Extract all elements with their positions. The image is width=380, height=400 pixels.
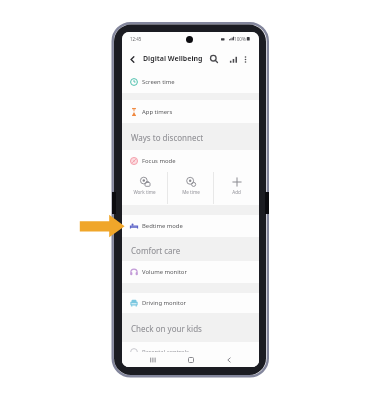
button[interactable]: Screen time [122, 70, 259, 93]
button[interactable]: Navigate up [125, 46, 139, 72]
button[interactable]: Usage statistics [226, 46, 240, 72]
button[interactable]: App timers [122, 100, 259, 123]
staticText: Parental controls [142, 348, 190, 356]
button[interactable]: Driving monitor [122, 293, 259, 313]
button[interactable]: Home [183, 352, 199, 367]
button[interactable]: Me time [168, 170, 213, 205]
button[interactable]: Search [207, 46, 221, 72]
button[interactable]: Bedtime mode [122, 215, 259, 237]
staticText: Volume monitor [142, 268, 187, 276]
staticText: Screen time [142, 78, 175, 86]
button[interactable]: More options [238, 46, 252, 72]
button[interactable]: Work time [122, 170, 167, 205]
staticText: Add [232, 189, 241, 195]
staticText: Check on your kids [131, 323, 202, 334]
staticText: 12:45 [130, 36, 142, 42]
staticText: 100% [234, 36, 246, 42]
button[interactable]: Add [214, 170, 259, 205]
button[interactable]: Back [221, 352, 237, 367]
staticText: Bedtime mode [142, 222, 183, 230]
staticText: App timers [142, 108, 173, 116]
staticText: Digital Wellbeing [143, 54, 203, 64]
button[interactable]: Volume monitor [122, 261, 259, 283]
button[interactable]: Recent apps [144, 352, 160, 367]
staticText: Ways to disconnect [131, 132, 204, 143]
staticText: Focus mode [142, 157, 176, 165]
staticText: Me time [182, 189, 200, 195]
staticText: Comfort care [131, 245, 181, 256]
staticText: Work time [133, 189, 156, 195]
button[interactable]: Focus mode [122, 150, 259, 171]
staticText: Driving monitor [142, 299, 186, 307]
